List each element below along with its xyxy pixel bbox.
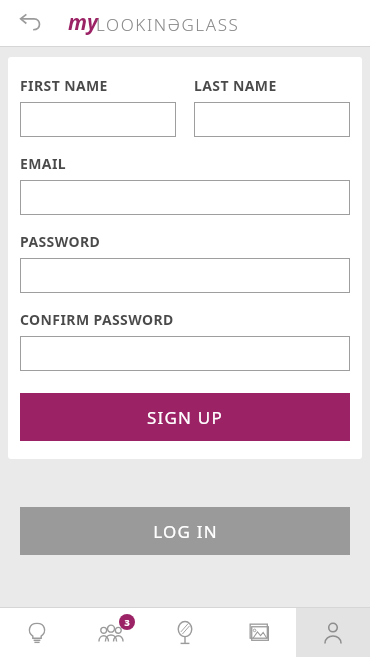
button[interactable]: Profile	[296, 608, 370, 657]
button[interactable]: Ideas	[0, 608, 74, 657]
button[interactable]	[20, 336, 350, 371]
staticText: SIGN UP	[147, 406, 223, 429]
staticText: 3	[124, 616, 130, 628]
button[interactable]	[194, 102, 350, 137]
staticText: PASSWORD	[20, 232, 101, 251]
button[interactable]: LOG IN	[20, 507, 350, 555]
staticText: EMAIL	[20, 154, 67, 173]
staticText: my	[68, 8, 98, 37]
button[interactable]: Photos	[222, 608, 296, 657]
button[interactable]	[20, 102, 176, 137]
button[interactable]: Back	[10, 3, 50, 43]
button[interactable]	[20, 180, 350, 215]
button[interactable]: Mirror	[148, 608, 222, 657]
button[interactable]: SIGN UP	[20, 393, 350, 441]
staticText: CONFIRM PASSWORD	[20, 310, 174, 329]
staticText: LOG IN	[153, 520, 218, 543]
button[interactable]	[20, 258, 350, 293]
staticText: LAST NAME	[194, 76, 277, 95]
button[interactable]: Friends	[74, 608, 148, 657]
staticText: FIRST NAME	[20, 76, 108, 95]
staticText: LOOKINƏGLASS	[96, 13, 240, 36]
